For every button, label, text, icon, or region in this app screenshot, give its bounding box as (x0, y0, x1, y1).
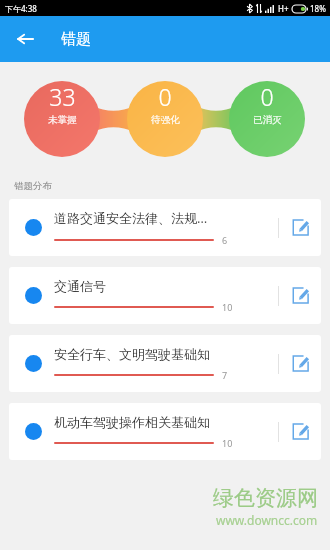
staticText: 6 (222, 234, 228, 246)
staticText: 10 (222, 437, 233, 449)
staticText: 安全行车、文明驾驶基础知 (54, 346, 210, 362)
button[interactable]: 交通信号 (9, 267, 321, 324)
staticText: 下午4:38 (5, 3, 37, 14)
button[interactable]: Edit (279, 403, 321, 460)
button[interactable]: 33 (24, 81, 100, 143)
button[interactable]: 道路交通安全法律、法规… (9, 199, 321, 256)
staticText: 道路交通安全法律、法规… (54, 209, 208, 227)
button[interactable]: Edit (279, 267, 321, 324)
button[interactable]: 安全行车、文明驾驶基础知 (9, 335, 321, 392)
staticText: www.downcc.com (216, 512, 318, 528)
staticText: 10 (222, 301, 233, 313)
staticText: 机动车驾驶操作相关基础知 (54, 414, 210, 430)
staticText: 18% (310, 3, 326, 14)
staticText: 绿色资源网 (213, 485, 318, 511)
button[interactable]: Edit (279, 335, 321, 392)
staticText: 0 (260, 81, 274, 112)
staticText: 已消灭 (253, 114, 282, 126)
staticText: 未掌握 (48, 114, 77, 126)
button[interactable]: 0 (229, 81, 305, 143)
button[interactable]: Back (8, 22, 42, 56)
staticText: 错题 (61, 30, 91, 49)
staticText: 待强化 (151, 114, 180, 126)
button[interactable]: 机动车驾驶操作相关基础知 (9, 403, 321, 460)
staticText: 7 (222, 369, 228, 381)
button[interactable]: Edit (279, 199, 321, 256)
staticText: 0 (158, 81, 172, 112)
staticText: 33 (49, 81, 76, 112)
staticText: 错题分布 (14, 180, 52, 192)
button[interactable]: 0 (127, 81, 203, 143)
staticText: H+ (278, 3, 289, 14)
staticText: 交通信号 (54, 278, 106, 294)
